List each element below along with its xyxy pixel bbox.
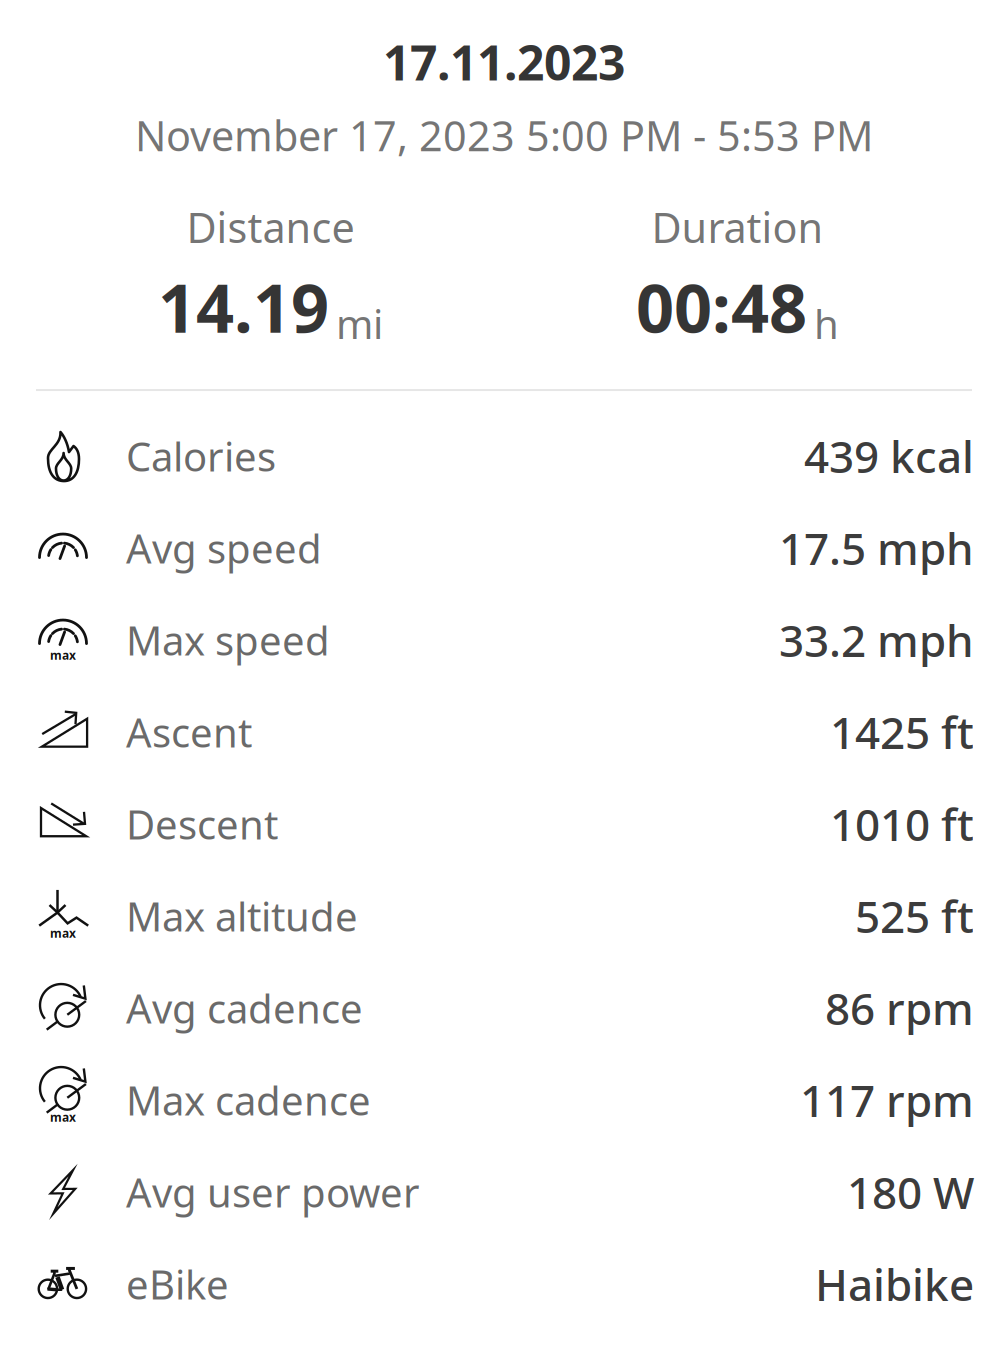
staticText: Max speed	[126, 613, 330, 667]
staticText: 1010 ft	[830, 795, 974, 853]
staticText: max	[50, 925, 76, 941]
staticText: eBike	[126, 1257, 229, 1311]
button[interactable]: Ascent	[0, 686, 1008, 778]
staticText: Calories	[126, 429, 276, 483]
staticText: 439 kcal	[804, 427, 974, 485]
staticText: Max cadence	[126, 1073, 371, 1127]
staticText: November 17, 2023 5:00 PM - 5:53 PM	[135, 108, 873, 163]
button[interactable]: max	[0, 870, 1008, 962]
staticText: 00:48	[636, 262, 807, 351]
staticText: 14.19	[158, 262, 329, 351]
staticText: Duration	[651, 200, 823, 254]
staticText: Avg user power	[126, 1165, 420, 1219]
staticText: 117 rpm	[800, 1071, 974, 1129]
staticText: Ascent	[126, 705, 252, 759]
staticText: Descent	[126, 797, 278, 851]
staticText: max	[50, 1109, 76, 1125]
staticText: 180 W	[847, 1163, 974, 1221]
staticText: Max altitude	[126, 889, 358, 943]
staticText: Avg speed	[126, 521, 322, 575]
staticText: 17.11.2023	[383, 30, 625, 94]
staticText: 17.5 mph	[779, 519, 974, 577]
staticText: max	[50, 647, 76, 663]
staticText: 1425 ft	[830, 703, 974, 761]
button[interactable]: Avg speed	[0, 502, 1008, 594]
button[interactable]: max	[0, 594, 1008, 686]
staticText: h	[814, 297, 839, 350]
button[interactable]: Avg user power	[0, 1146, 1008, 1238]
staticText: Distance	[186, 200, 354, 254]
button[interactable]: Descent	[0, 778, 1008, 870]
staticText: 86 rpm	[825, 979, 974, 1037]
staticText: 525 ft	[855, 887, 974, 945]
button[interactable]: Avg cadence	[0, 962, 1008, 1054]
staticText: mi	[336, 297, 383, 350]
staticText: Avg cadence	[126, 981, 363, 1035]
button[interactable]: max	[0, 1054, 1008, 1146]
button[interactable]: Calories	[0, 410, 1008, 502]
staticText: 33.2 mph	[779, 611, 974, 669]
button[interactable]: eBike	[0, 1238, 1008, 1330]
staticText: Haibike	[815, 1255, 974, 1313]
